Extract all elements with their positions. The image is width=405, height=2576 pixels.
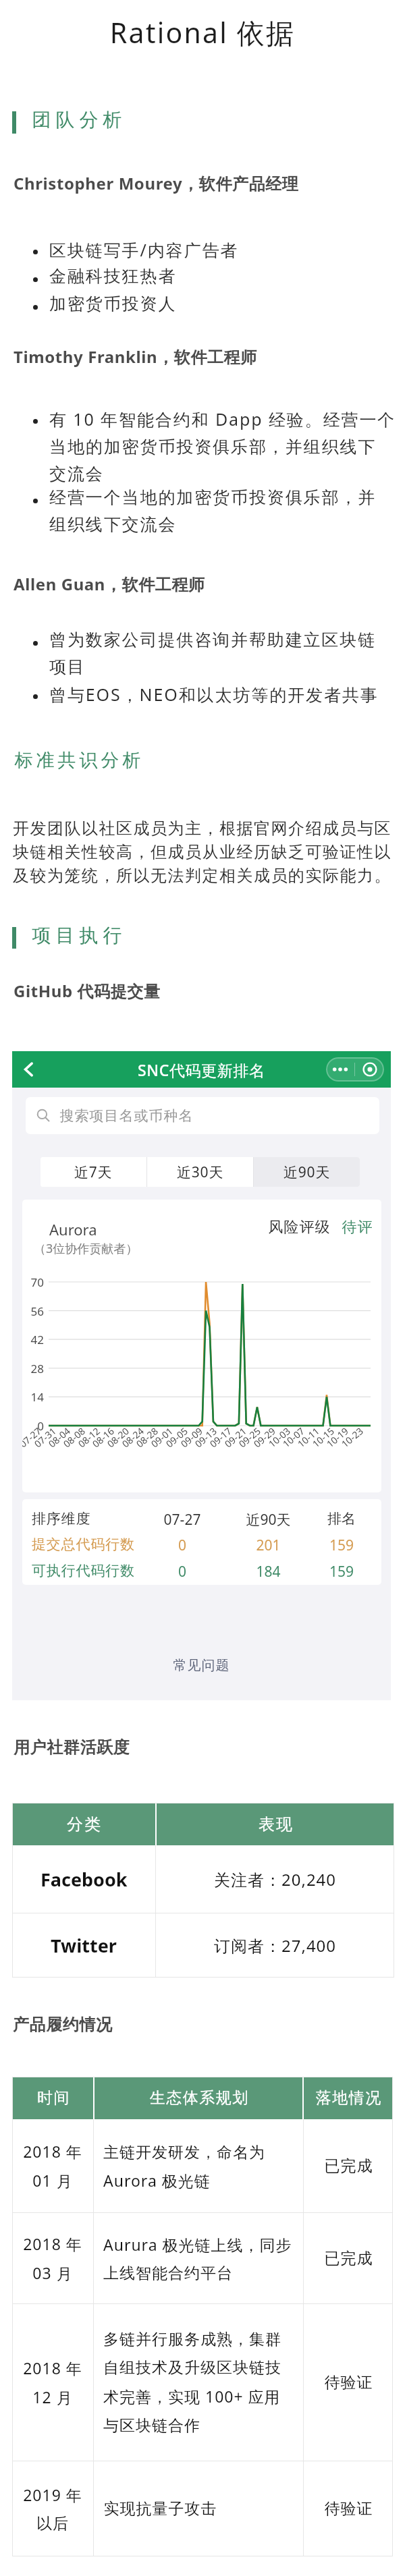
staticText: 10-19 bbox=[323, 1424, 351, 1450]
button[interactable]: 近30天 bbox=[147, 1157, 253, 1187]
staticText: 排名 bbox=[315, 1510, 368, 1528]
staticText: 09-05 bbox=[163, 1424, 190, 1450]
staticText: Christopher Mourey，软件产品经理 bbox=[13, 172, 299, 194]
staticText: 开发团队以社区成员为主，根据官网介绍成员与区 块链相关性较高，但成员从业经历缺乏… bbox=[13, 818, 401, 886]
staticText: 多链并行服务成熟，集群自组技术及升级区块链技术完善，实现 100+ 应用与区块链… bbox=[103, 2330, 294, 2436]
staticText: 近90天 bbox=[283, 1163, 331, 1182]
staticText: 08-04 bbox=[45, 1424, 73, 1450]
staticText: 2018 年 03 月 bbox=[23, 2233, 82, 2284]
staticText: 07-31 bbox=[31, 1424, 59, 1450]
staticText: 订阅者：27,400 bbox=[214, 1934, 337, 1957]
staticText: 可执行代码行数 bbox=[32, 1562, 143, 1579]
staticText: 10-07 bbox=[280, 1424, 307, 1450]
staticText: 14 bbox=[22, 1389, 44, 1405]
staticText: 10-15 bbox=[309, 1424, 337, 1450]
staticText: 08-20 bbox=[104, 1424, 131, 1450]
staticText: 09-17 bbox=[207, 1424, 234, 1450]
staticText: 56 bbox=[22, 1304, 44, 1319]
staticText: 08-24 bbox=[119, 1424, 146, 1450]
staticText: 0 bbox=[143, 1562, 221, 1581]
staticText: 09-25 bbox=[236, 1424, 263, 1450]
staticText: 近90天 bbox=[221, 1510, 315, 1530]
staticText: 有 10 年智能合约和 Dapp 经验。经营一个 当地的加密货币投资俱乐部，并组… bbox=[49, 408, 400, 484]
staticText: 0 bbox=[143, 1536, 221, 1555]
staticText: Twitter bbox=[51, 1933, 117, 1958]
staticText: 42 bbox=[22, 1332, 44, 1347]
staticText: 10-23 bbox=[338, 1424, 366, 1450]
staticText: 生态体系规划 bbox=[149, 2088, 248, 2108]
staticText: 10-03 bbox=[265, 1424, 293, 1450]
staticText: 08-16 bbox=[89, 1424, 117, 1450]
button[interactable]: 搜索项目名或币种名 bbox=[26, 1097, 379, 1134]
staticText: 近30天 bbox=[177, 1163, 224, 1182]
staticText: 已完成 bbox=[324, 2156, 373, 2176]
staticText: 曾与EOS，NEO和以太坊等的开发者共事 bbox=[49, 683, 400, 706]
button[interactable]: More options bbox=[326, 1057, 354, 1082]
staticText: 08-08 bbox=[60, 1424, 88, 1450]
staticText: 07-27 bbox=[143, 1510, 221, 1530]
staticText: 10-11 bbox=[294, 1424, 322, 1450]
staticText: 搜索项目名或币种名 bbox=[59, 1107, 193, 1125]
staticText: 产品履约情况 bbox=[13, 2015, 113, 2035]
staticText: 主链开发研发，命名为 Aurora 极光链 bbox=[103, 2141, 294, 2191]
staticText: （3位协作贡献者） bbox=[34, 1240, 138, 1257]
staticText: 70 bbox=[22, 1275, 44, 1290]
staticText: 金融科技狂热者 bbox=[49, 266, 400, 287]
staticText: 加密货币投资人 bbox=[49, 293, 400, 314]
staticText: 184 bbox=[221, 1562, 315, 1581]
staticText: 28 bbox=[22, 1361, 44, 1376]
staticText: 排序维度 bbox=[32, 1510, 143, 1528]
staticText: 关注者：20,240 bbox=[214, 1868, 337, 1891]
staticText: 曾为数家公司提供咨询并帮助建立区块链 项目 bbox=[49, 629, 400, 677]
button[interactable]: 近7天 bbox=[40, 1157, 146, 1187]
staticText: SNC代码更新排名 bbox=[138, 1059, 265, 1080]
staticText: 已完成 bbox=[324, 2249, 373, 2268]
staticText: 分类 bbox=[66, 1814, 101, 1835]
staticText: 09-13 bbox=[192, 1424, 219, 1450]
staticText: 标准共识分析 bbox=[13, 749, 142, 772]
staticText: 09-01 bbox=[148, 1424, 175, 1450]
staticText: GitHub 代码提交量 bbox=[13, 980, 161, 1002]
staticText: Aurora bbox=[49, 1219, 97, 1239]
staticText: 07-27 bbox=[22, 1424, 44, 1450]
staticText: 201 bbox=[221, 1536, 315, 1555]
staticText: 09-09 bbox=[178, 1424, 205, 1450]
staticText: 08-28 bbox=[133, 1424, 161, 1450]
staticText: 2018 年 12 月 bbox=[23, 2357, 82, 2408]
button[interactable]: 近90天 bbox=[254, 1157, 360, 1187]
staticText: 待验证 bbox=[324, 2373, 373, 2392]
staticText: 待验证 bbox=[324, 2499, 373, 2519]
staticText: 159 bbox=[315, 1562, 368, 1581]
staticText: 用户社群活跃度 bbox=[13, 1737, 130, 1758]
staticText: 近7天 bbox=[74, 1163, 113, 1182]
staticText: 待评 bbox=[342, 1218, 373, 1237]
staticText: 2018 年 01 月 bbox=[23, 2141, 82, 2191]
staticText: 区块链写手/内容广告者 bbox=[49, 238, 400, 261]
button[interactable]: Back bbox=[12, 1053, 45, 1086]
staticText: 团队分析 bbox=[30, 108, 124, 132]
staticText: 落地情况 bbox=[315, 2088, 381, 2108]
staticText: Aurura 极光链上线，同步上线智能合约平台 bbox=[103, 2234, 294, 2283]
staticText: 08-12 bbox=[75, 1424, 102, 1450]
button[interactable]: 常见问题 bbox=[12, 1657, 391, 1674]
button[interactable]: Close bbox=[355, 1057, 384, 1082]
staticText: 实现抗量子攻击 bbox=[103, 2499, 217, 2519]
staticText: 159 bbox=[315, 1536, 368, 1555]
staticText: Timothy Franklin，软件工程师 bbox=[13, 345, 257, 368]
staticText: 项目执行 bbox=[30, 924, 124, 947]
staticText: 时间 bbox=[36, 2088, 70, 2108]
staticText: 风险评级 bbox=[268, 1218, 330, 1237]
staticText: Rational 依据 bbox=[0, 13, 405, 51]
staticText: Allen Guan，软件工程师 bbox=[13, 573, 205, 595]
staticText: 2019 年 以后 bbox=[23, 2484, 82, 2533]
staticText: 09-21 bbox=[222, 1424, 249, 1450]
staticText: 09-29 bbox=[251, 1424, 278, 1450]
staticText: 表现 bbox=[258, 1814, 293, 1835]
staticText: 提交总代码行数 bbox=[32, 1536, 143, 1553]
staticText: 0 bbox=[22, 1418, 44, 1434]
staticText: 经营一个当地的加密货币投资俱乐部，并 组织线下交流会 bbox=[49, 487, 400, 535]
staticText: Facebook bbox=[40, 1867, 128, 1892]
